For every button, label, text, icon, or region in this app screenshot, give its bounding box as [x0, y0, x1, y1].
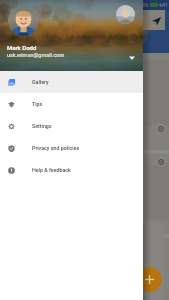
button[interactable]: Add — [137, 267, 162, 292]
button[interactable]: Help & feedback — [0, 159, 143, 181]
staticText: usk.wiman@gmail.com — [7, 52, 65, 58]
button[interactable]: Gallery — [0, 71, 143, 93]
staticText: 76% — [140, 3, 149, 8]
staticText: Gallery — [32, 79, 49, 85]
button[interactable]: Show accounts — [126, 52, 138, 64]
staticText: Mark Dodd — [7, 44, 37, 51]
staticText: Settings — [32, 123, 52, 129]
button[interactable]: Privacy and policies — [0, 137, 143, 159]
button[interactable]: Tips — [0, 93, 143, 115]
button[interactable]: My location — [155, 156, 166, 167]
other: Navigate — [151, 15, 162, 26]
other: Open navigation drawer — [8, 15, 19, 26]
button[interactable]: Profile photo — [8, 5, 39, 36]
staticText: Tips — [32, 101, 43, 107]
staticText: Privacy and policies — [32, 145, 80, 151]
staticText: 4:41 — [159, 3, 168, 8]
button[interactable]: Search here — [4, 10, 165, 30]
button[interactable]: Settings — [0, 115, 143, 137]
button[interactable]: Switch account — [116, 5, 135, 24]
staticText: Help & feedback — [32, 167, 71, 173]
button[interactable]: Place details — [4, 222, 164, 300]
button[interactable]: Layers — [155, 123, 166, 134]
